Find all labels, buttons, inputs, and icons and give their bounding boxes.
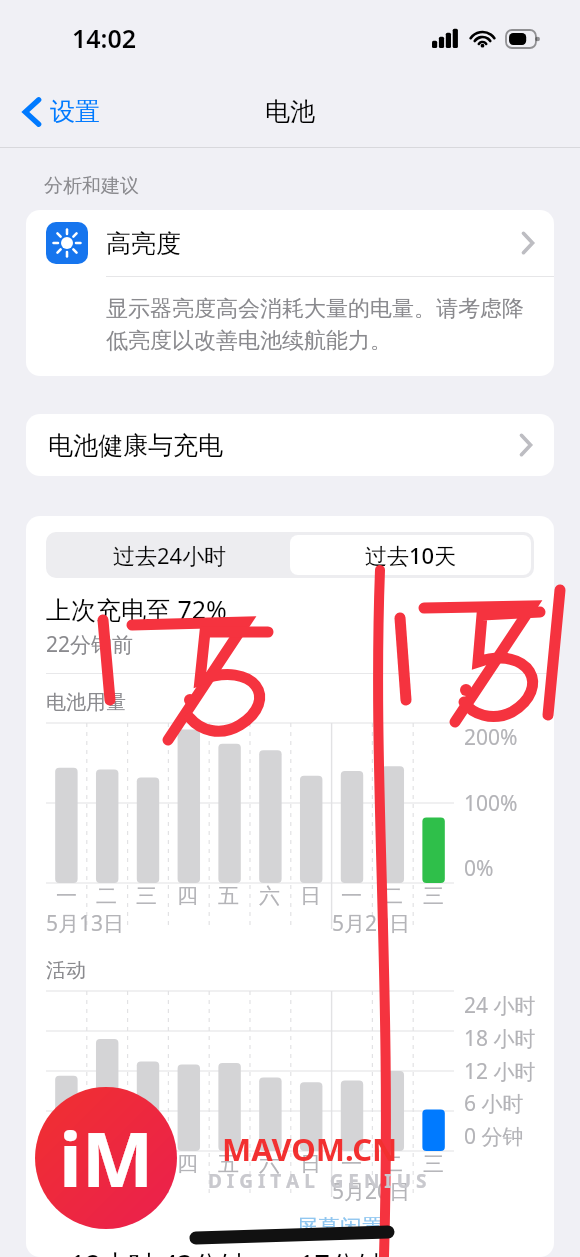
staticText: 日 xyxy=(300,1151,321,1177)
staticText: 200% xyxy=(464,723,518,752)
staticText: 14:02 xyxy=(72,21,137,55)
staticText: 六 xyxy=(259,883,280,909)
staticText: 二 xyxy=(382,1151,403,1177)
staticText: 6 小时 xyxy=(464,1089,524,1118)
staticText: 二 xyxy=(96,883,117,909)
staticText: 17分钟 xyxy=(299,1246,384,1257)
staticText: 二 xyxy=(96,1151,117,1177)
staticText: 活动 xyxy=(46,958,86,983)
button[interactable]: 设置 xyxy=(16,90,108,133)
staticText: 5月13日 xyxy=(46,1177,125,1206)
button[interactable]: 过去10天 xyxy=(290,535,531,575)
button[interactable]: 电池健康与充电 xyxy=(26,414,554,476)
staticText: 12小时 43分钟 xyxy=(70,1246,247,1257)
staticText: 一 xyxy=(341,883,362,909)
staticText: 电池 xyxy=(265,96,315,127)
staticText: 5月20日 xyxy=(332,1177,411,1206)
staticText: 18 小时 xyxy=(464,1024,536,1053)
staticText: 上次充电至 72% xyxy=(46,592,227,626)
staticText: 过去10天 xyxy=(365,540,457,570)
staticText: iM xyxy=(59,1106,154,1210)
staticText: 电池健康与充电 xyxy=(48,430,223,461)
staticText: 屏幕闲置 xyxy=(26,1214,384,1242)
staticText: 一 xyxy=(56,883,77,909)
staticText: 二 xyxy=(382,883,403,909)
staticText: 0% xyxy=(464,854,494,883)
staticText: D I G I T A L G E N I U S xyxy=(208,1168,427,1194)
staticText: 日 xyxy=(300,883,321,909)
staticText: 12 小时 xyxy=(464,1057,536,1086)
staticText: 24 小时 xyxy=(464,991,536,1020)
staticText: 一 xyxy=(341,1151,362,1177)
staticText: 高亮度 xyxy=(106,228,181,259)
staticText: 四 xyxy=(177,1151,198,1177)
staticText: 四 xyxy=(177,883,198,909)
staticText: 22分钟前 xyxy=(46,630,134,659)
staticText: 设置 xyxy=(50,96,100,127)
staticText: 六 xyxy=(259,1151,280,1177)
staticText: 五 xyxy=(218,1151,239,1177)
staticText: 一 xyxy=(56,1151,77,1177)
staticText: MAVOM.CN xyxy=(222,1128,398,1170)
staticText: 三 xyxy=(136,883,157,909)
button[interactable]: 高亮度 xyxy=(26,210,554,376)
staticText: 100% xyxy=(464,789,518,818)
staticText: 分析和建议 xyxy=(44,174,139,198)
button[interactable]: 过去24小时 xyxy=(49,535,290,575)
staticText: 显示器亮度高会消耗大量的电量。请考虑降低亮度以改善电池续航能力。 xyxy=(106,295,532,354)
staticText: 三 xyxy=(423,1151,444,1177)
staticText: 0 分钟 xyxy=(464,1122,524,1151)
staticText: 过去24小时 xyxy=(113,540,227,570)
staticText: 5月13日 xyxy=(46,909,125,938)
staticText: 5月20日 xyxy=(332,909,411,938)
staticText: 三 xyxy=(136,1151,157,1177)
staticText: 三 xyxy=(423,883,444,909)
staticText: 五 xyxy=(218,883,239,909)
staticText: 电池用量 xyxy=(46,690,126,715)
